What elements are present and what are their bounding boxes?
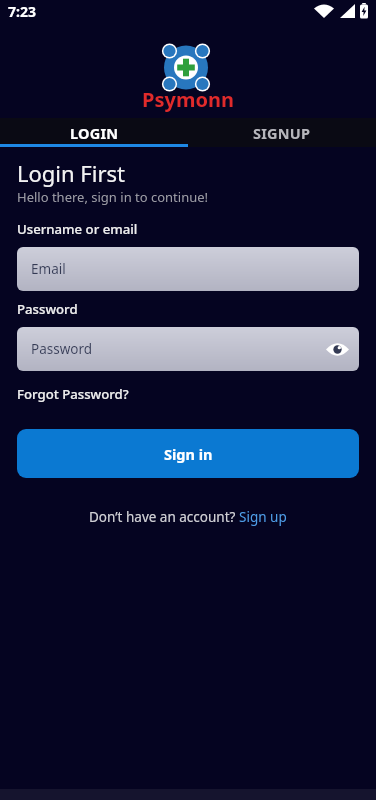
staticText: 7:23 — [8, 2, 36, 21]
staticText: Hello there, sign in to continue! — [17, 188, 209, 206]
staticText: Don’t have an account? — [89, 508, 239, 526]
button[interactable]: Email — [17, 247, 359, 291]
button[interactable]: LOGIN — [0, 118, 188, 144]
staticText: Email — [31, 260, 66, 278]
staticText: Password — [17, 300, 78, 318]
button[interactable]: Forgot Password? — [17, 385, 129, 403]
staticText: Password — [31, 340, 93, 358]
staticText: Psymonn — [142, 86, 234, 113]
button[interactable]: Sign in — [17, 429, 359, 478]
staticText: Sign in — [164, 444, 213, 464]
button[interactable]: Sign up — [239, 508, 287, 526]
button[interactable]: SIGNUP — [188, 118, 376, 144]
staticText: SIGNUP — [253, 123, 311, 143]
button[interactable]: Password — [17, 327, 359, 371]
staticText: Login First — [17, 158, 126, 188]
staticText: LOGIN — [70, 123, 119, 143]
staticText: Username or email — [17, 220, 138, 238]
